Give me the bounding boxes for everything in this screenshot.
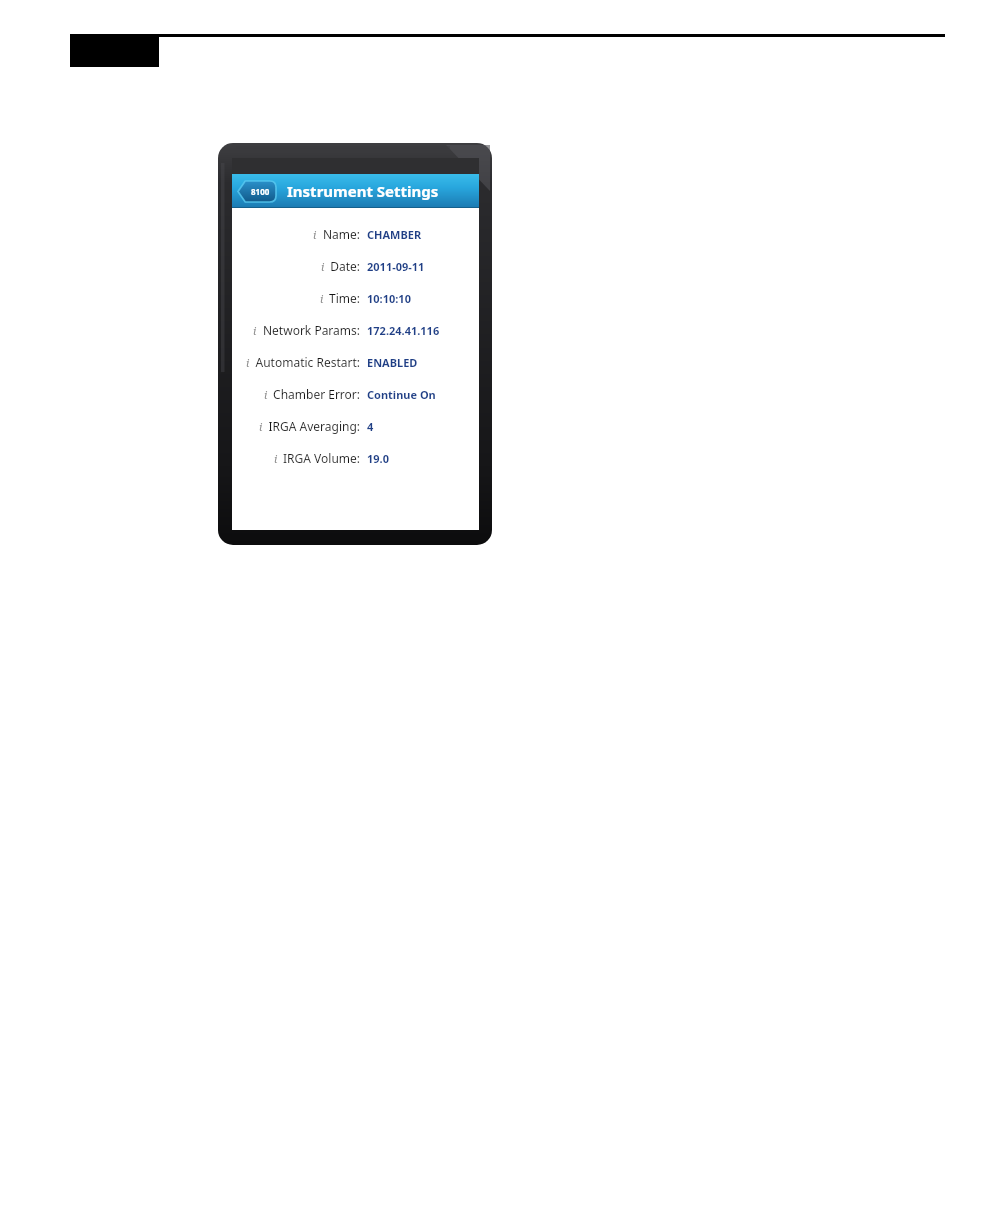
button[interactable]: i — [232, 442, 479, 474]
staticText: 4 — [367, 419, 374, 434]
staticText: i — [321, 259, 325, 274]
staticText: 8100 — [251, 186, 270, 197]
button[interactable]: i — [232, 410, 479, 442]
staticText: IRGA Averaging: — [268, 418, 360, 434]
staticText: Name: — [322, 226, 360, 242]
staticText: i — [264, 387, 268, 402]
button[interactable]: i — [232, 282, 479, 314]
staticText: Network Params: — [262, 322, 360, 338]
staticText: 2011-09-11 — [367, 259, 425, 274]
staticText: Continue On — [367, 387, 436, 402]
staticText: ENABLED — [367, 355, 418, 370]
staticText: IRGA Volume: — [283, 450, 360, 466]
button[interactable]: i — [232, 378, 479, 410]
staticText: i — [259, 419, 263, 434]
button[interactable]: i — [232, 218, 479, 250]
button[interactable]: i — [232, 250, 479, 282]
staticText: Instrument Settings — [287, 181, 439, 201]
staticText: Automatic Restart: — [255, 354, 360, 370]
staticText: i — [274, 451, 278, 466]
staticText: i — [313, 227, 317, 242]
staticText: i — [253, 323, 257, 338]
staticText: CHAMBER — [367, 227, 422, 242]
staticText: 172.24.41.116 — [367, 323, 440, 338]
button[interactable]: i — [232, 314, 479, 346]
staticText: Time: — [329, 290, 360, 306]
staticText: 10:10:10 — [367, 291, 411, 306]
staticText: i — [320, 291, 324, 306]
staticText: i — [246, 355, 250, 370]
button[interactable]: Back to 8100 — [238, 181, 276, 202]
button[interactable]: i — [232, 346, 479, 378]
staticText: Chamber Error: — [273, 386, 360, 402]
staticText: Date: — [330, 258, 360, 274]
staticText: 19.0 — [367, 451, 389, 466]
